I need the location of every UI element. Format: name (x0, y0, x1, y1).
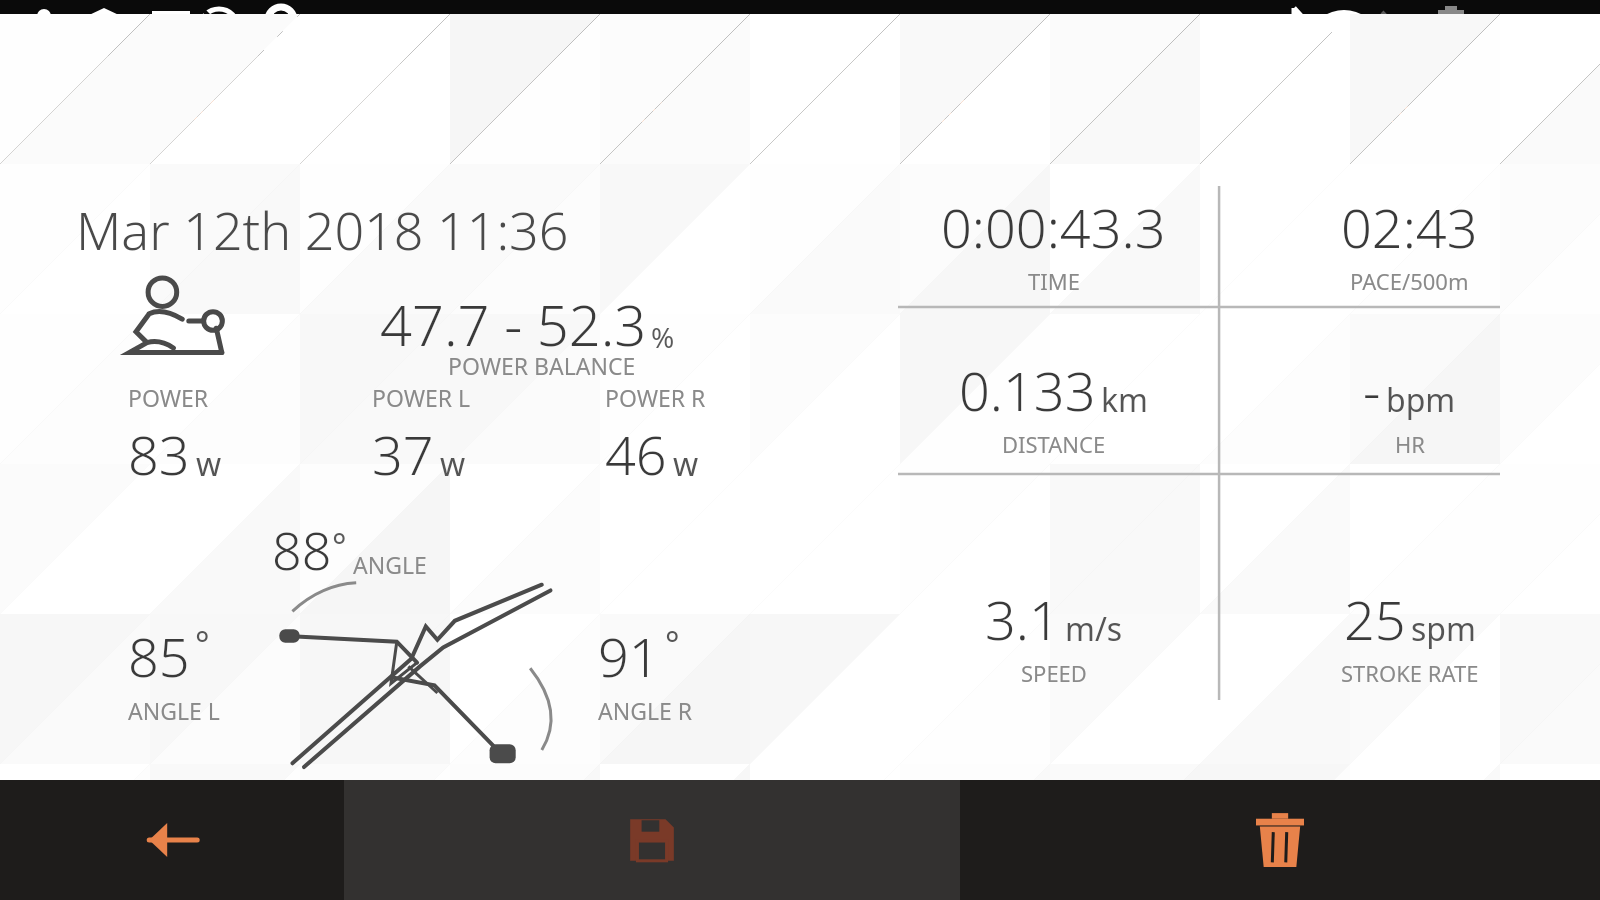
button[interactable]: - (1219, 322, 1600, 489)
staticText: 0:00:43.3 (941, 190, 1166, 264)
staticText: PACE/500m (1350, 266, 1469, 296)
staticText: Mar 12th 2018 11:36 (76, 194, 569, 265)
staticText: POWER BALANCE (448, 350, 636, 381)
staticText: 02:43 (1341, 190, 1478, 264)
staticText: 88 (272, 514, 332, 585)
button[interactable]: 3.1 (888, 489, 1219, 780)
staticText: TIME (1028, 266, 1080, 296)
staticText: 25 (1344, 582, 1406, 656)
staticText: SIGNALS (1339, 90, 1462, 131)
staticText: - (1363, 353, 1381, 427)
staticText: SPEED (1021, 658, 1087, 688)
staticText: HR (1395, 429, 1425, 459)
button[interactable]: Save (344, 780, 960, 900)
staticText: 91 (598, 619, 660, 693)
staticText: 85 (128, 619, 190, 693)
staticText: w (196, 442, 222, 486)
staticText: POWER R (605, 382, 706, 413)
button[interactable]: 25 (1219, 489, 1600, 780)
staticText: ° (665, 621, 680, 667)
staticText: 83 (128, 417, 190, 491)
staticText: ° (332, 523, 347, 569)
button[interactable]: BALANCE (800, 56, 1200, 164)
button[interactable]: SIGNALS (1200, 56, 1600, 164)
staticText: m/s (1065, 607, 1123, 651)
staticText: 11:37 (1514, 9, 1586, 47)
staticText: BALANCE (934, 90, 1066, 131)
button[interactable]: 02:43 (1219, 164, 1600, 322)
staticText: ° (195, 621, 210, 667)
button[interactable]: STROKES (400, 56, 800, 164)
staticText: DISTANCE (1002, 429, 1106, 459)
staticText: ANGLE (353, 549, 427, 580)
staticText: bpm (1386, 378, 1456, 422)
staticText: km (1101, 378, 1149, 422)
button[interactable]: Back (0, 780, 344, 900)
staticText: STROKE RATE (1341, 658, 1479, 688)
staticText: ANGLE L (128, 695, 220, 726)
button[interactable]: 0.133 (888, 322, 1219, 489)
staticText: STROKES (537, 90, 664, 131)
staticText: 46 (605, 417, 667, 491)
staticText: SUMMARY (126, 90, 274, 131)
staticText: POWER (128, 382, 209, 413)
staticText: POWER L (372, 382, 471, 413)
staticText: spm (1411, 607, 1476, 651)
button[interactable]: SUMMARY (0, 56, 400, 164)
staticText: ANGLE R (598, 695, 693, 726)
staticText: 0.133 (959, 353, 1096, 427)
staticText: w (673, 442, 699, 486)
button[interactable]: 0:00:43.3 (888, 164, 1219, 322)
staticText: 3.1 (985, 582, 1060, 656)
button[interactable]: Delete (960, 780, 1600, 900)
staticText: w (440, 442, 466, 486)
staticText: 37 (372, 417, 434, 491)
staticText: 47.7 - 52.3 (380, 286, 647, 362)
staticText: % (651, 318, 675, 356)
